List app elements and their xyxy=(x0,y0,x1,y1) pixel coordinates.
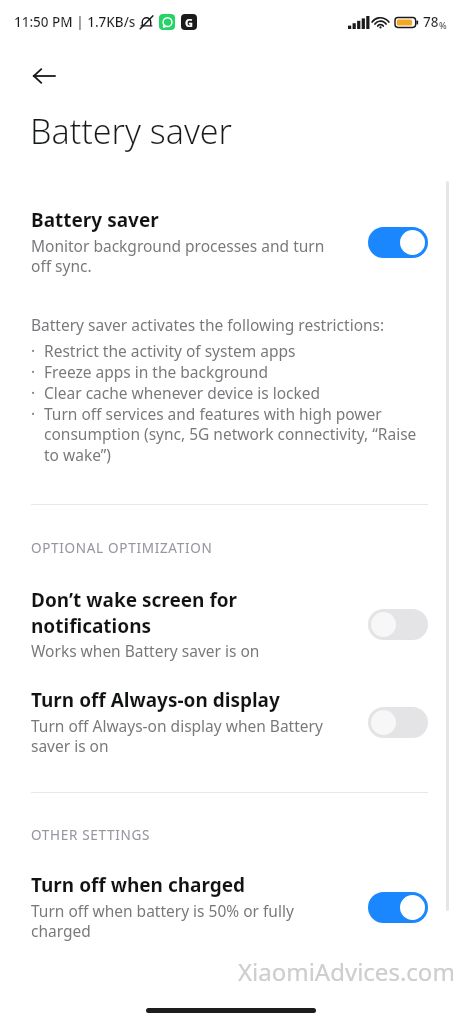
staticText: OTHER SETTINGS xyxy=(31,826,151,844)
staticText: · xyxy=(31,382,36,403)
staticText: Battery saver xyxy=(30,108,232,154)
button[interactable]: Home xyxy=(146,1008,316,1013)
button[interactable]: Turn off when charged xyxy=(368,892,428,923)
button[interactable]: Battery saver xyxy=(0,207,461,277)
staticText: Turn off Always-on display xyxy=(31,687,280,713)
staticText: Battery saver xyxy=(31,207,159,233)
staticText: Turn off Always-on display when Battery … xyxy=(31,715,349,757)
staticText: OPTIONAL OPTIMIZATION xyxy=(31,539,213,557)
staticText: % xyxy=(439,19,447,31)
staticText: 11:50 PM | 1.7KB/s xyxy=(14,13,136,31)
staticText: 78 xyxy=(423,13,439,31)
button[interactable]: Back xyxy=(20,52,68,100)
staticText: Turn off services and features with high… xyxy=(44,403,428,466)
staticText: Monitor background processes and turn of… xyxy=(31,235,346,277)
staticText: Restrict the activity of system apps xyxy=(44,340,296,361)
button[interactable]: Don’t wake screen for notifications xyxy=(368,609,428,640)
staticText: XiaomiAdvices.com xyxy=(238,955,455,988)
button[interactable]: Battery saver xyxy=(368,227,428,258)
staticText: Don’t wake screen for notifications xyxy=(31,587,286,638)
staticText: Battery saver activates the following re… xyxy=(31,314,385,335)
button[interactable]: Don’t wake screen for notifications xyxy=(0,587,461,661)
staticText: Clear cache whenever device is locked xyxy=(44,382,321,403)
staticText: · xyxy=(31,361,36,382)
staticText: G xyxy=(185,15,193,30)
staticText: Freeze apps in the background xyxy=(44,361,268,382)
staticText: Works when Battery saver is on xyxy=(31,640,260,661)
staticText: · xyxy=(31,403,36,424)
button[interactable]: Turn off Always-on display xyxy=(368,707,428,738)
staticText: Turn off when battery is 50% or fully ch… xyxy=(31,900,331,942)
button[interactable]: Turn off Always-on display xyxy=(0,687,461,757)
staticText: · xyxy=(31,340,36,361)
button[interactable]: Turn off when charged xyxy=(0,872,461,942)
staticText: Turn off when charged xyxy=(31,872,246,898)
